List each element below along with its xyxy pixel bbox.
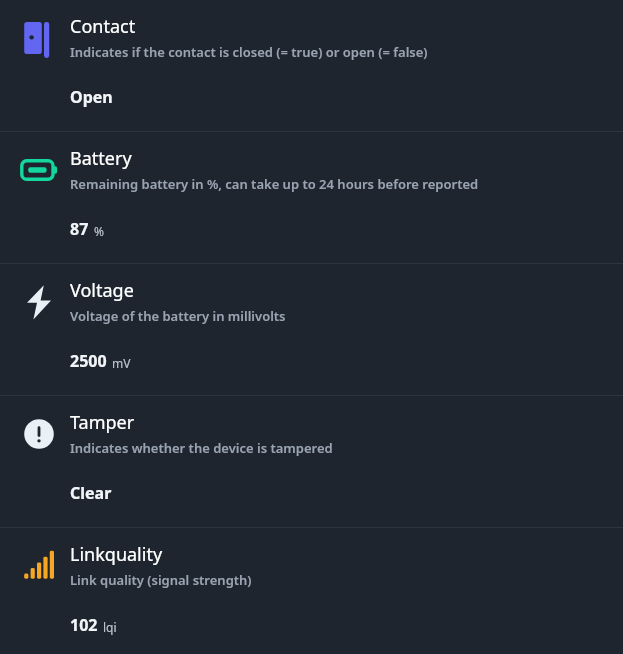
button[interactable]: Contact sensor: [0, 0, 623, 131]
staticText: Remaining battery in %, can take up to 2…: [70, 175, 479, 193]
staticText: mV: [112, 355, 131, 371]
other: Contact sensor: [8, 14, 70, 62]
staticText: 2500: [70, 350, 107, 372]
other: Voltage: [8, 278, 70, 326]
staticText: 87: [70, 218, 89, 240]
staticText: Linkquality: [70, 542, 163, 567]
staticText: Contact: [70, 14, 136, 39]
other: Battery: [8, 146, 70, 194]
button[interactable]: Tamper: [0, 396, 623, 527]
other: Tamper: [8, 410, 70, 458]
staticText: Battery: [70, 146, 132, 171]
staticText: Open: [70, 86, 113, 108]
staticText: Link quality (signal strength): [70, 571, 252, 589]
button[interactable]: Link quality: [0, 528, 623, 654]
staticText: %: [94, 223, 104, 239]
staticText: 102: [70, 614, 98, 636]
staticText: Tamper: [70, 410, 135, 435]
staticText: Indicates if the contact is closed (= tr…: [70, 43, 428, 61]
staticText: Voltage of the battery in millivolts: [70, 307, 286, 325]
staticText: Voltage: [70, 278, 134, 303]
other: Link quality: [8, 542, 70, 590]
staticText: Indicates whether the device is tampered: [70, 439, 333, 457]
staticText: Clear: [70, 482, 112, 504]
staticText: lqi: [103, 619, 117, 635]
button[interactable]: Battery: [0, 132, 623, 263]
button[interactable]: Voltage: [0, 264, 623, 395]
